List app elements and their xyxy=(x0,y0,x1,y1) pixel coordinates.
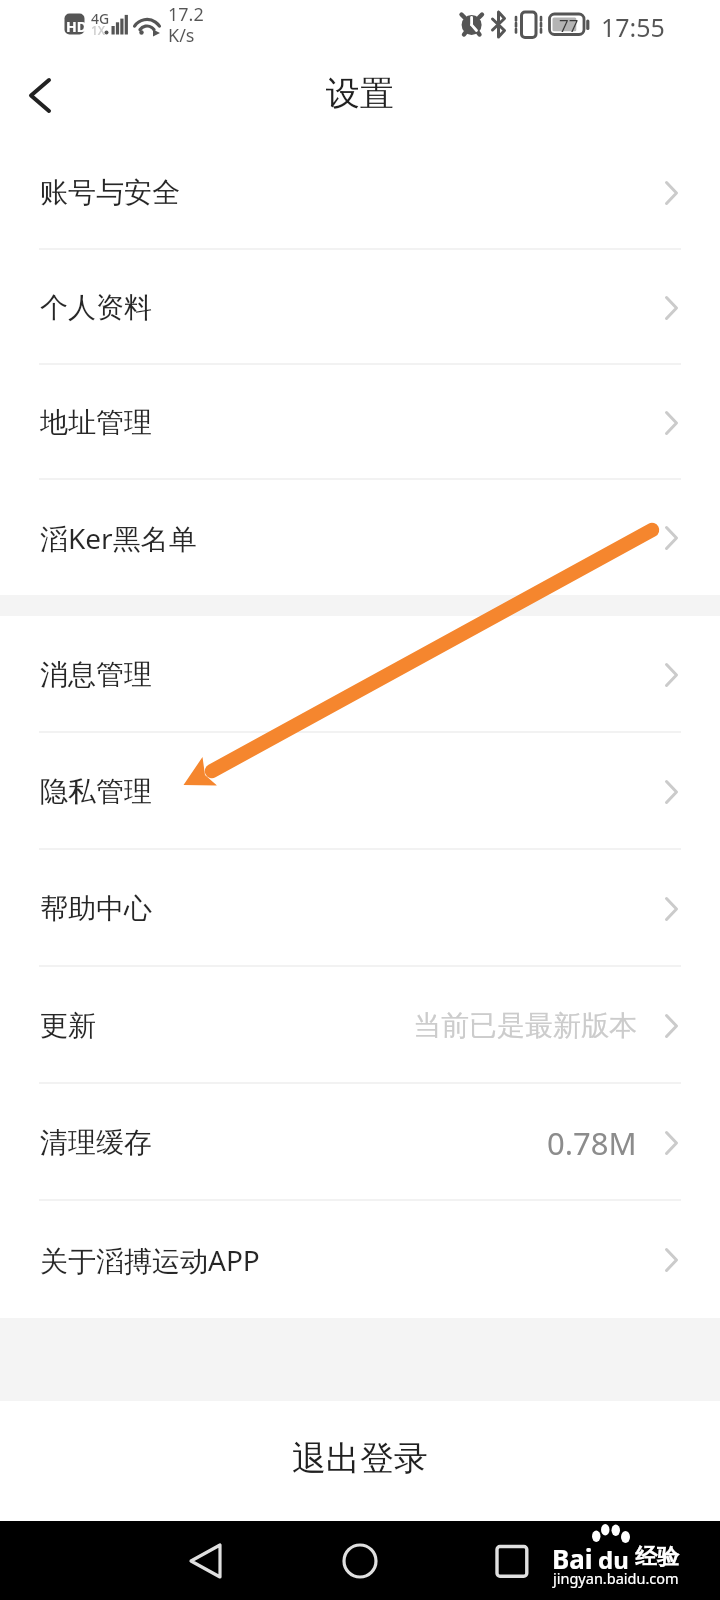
staticText: 1X xyxy=(91,22,106,38)
staticText: HD xyxy=(66,17,87,36)
staticText: 17:55 xyxy=(601,10,665,44)
staticText: 设置 xyxy=(326,72,394,115)
staticText: 消息管理 xyxy=(40,657,152,692)
staticText: 当前已是最新版本 xyxy=(413,1008,637,1043)
staticText: 经验 xyxy=(635,1543,679,1571)
button[interactable]: 帮助中心 xyxy=(0,850,720,967)
staticText: 清理缓存 xyxy=(40,1125,152,1160)
staticText: 帮助中心 xyxy=(40,891,152,926)
button[interactable]: 关于滔搏运动APP xyxy=(0,1201,720,1318)
staticText: du xyxy=(598,1543,629,1576)
button[interactable]: 隐私管理 xyxy=(0,733,720,850)
button[interactable]: 地址管理 xyxy=(0,365,720,480)
button[interactable]: 退出登录 xyxy=(0,1401,720,1521)
staticText: 滔Ker黑名单 xyxy=(40,519,197,557)
staticText: 账号与安全 xyxy=(40,175,180,210)
button[interactable]: Home xyxy=(320,1521,400,1600)
button[interactable]: 更新 xyxy=(0,967,720,1084)
staticText: 77 xyxy=(559,14,579,37)
staticText: 0.78M xyxy=(547,1122,637,1164)
button[interactable]: 个人资料 xyxy=(0,250,720,365)
staticText: K/s xyxy=(168,23,195,48)
button[interactable]: 账号与安全 xyxy=(0,135,720,250)
staticText: 17.2 xyxy=(168,2,204,27)
button[interactable]: 清理缓存 xyxy=(0,1084,720,1201)
staticText: 退出登录 xyxy=(292,1437,428,1480)
staticText: 隐私管理 xyxy=(40,774,152,809)
button[interactable]: 消息管理 xyxy=(0,616,720,733)
button[interactable]: Back xyxy=(0,55,80,135)
staticText: Bai xyxy=(552,1541,593,1576)
staticText: jingyan.baidu.com xyxy=(553,1568,679,1588)
staticText: 地址管理 xyxy=(40,405,152,440)
button[interactable]: 滔Ker黑名单 xyxy=(0,480,720,595)
staticText: 更新 xyxy=(40,1008,96,1043)
button[interactable]: Recent apps xyxy=(471,1521,551,1600)
button[interactable]: Back xyxy=(166,1521,246,1600)
staticText: 关于滔搏运动APP xyxy=(40,1241,260,1279)
staticText: 4G xyxy=(91,9,110,28)
staticText: 个人资料 xyxy=(40,290,152,325)
